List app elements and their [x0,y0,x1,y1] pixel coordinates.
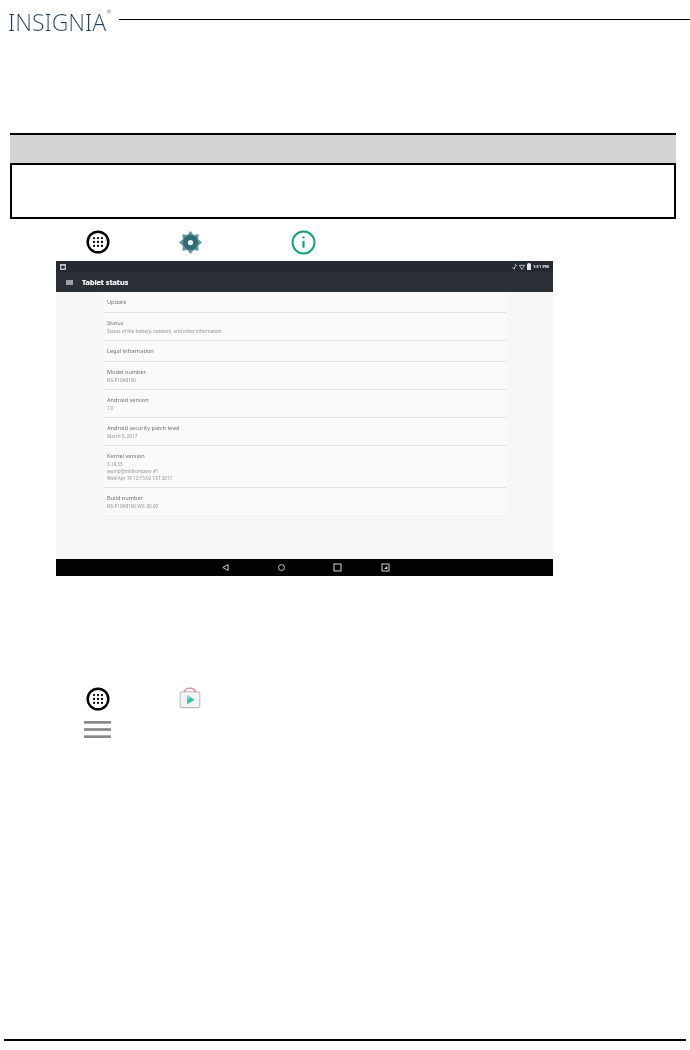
staticText: Legal information [107,347,154,355]
button[interactable]: Screenshot [372,559,398,576]
staticText: Kernel version [107,452,145,460]
staticText: ® [107,9,112,16]
button[interactable]: Update [103,292,506,312]
staticText: 1:11 PM [533,264,549,270]
button[interactable]: Model number [103,362,506,389]
button[interactable]: Settings [178,230,203,255]
button[interactable]: Kernel version [103,446,506,487]
staticText: Status of the battery, network, and othe… [107,328,222,334]
staticText: Model number [107,368,146,376]
button[interactable]: Android security patch level [103,418,506,445]
staticText: Build number [107,494,143,502]
button[interactable]: Apps [86,687,110,711]
staticText: Android version [107,396,149,404]
staticText: Wed Apr 19 12:15:02 CST 2017 [107,475,173,481]
button[interactable]: Android version [103,390,506,417]
button[interactable]: Legal information [103,341,506,361]
button[interactable]: About [291,230,316,255]
staticText: 3.18.35 [107,461,123,467]
button[interactable]: Recent apps [324,559,350,576]
button[interactable]: Home [268,559,294,576]
staticText: Tablet status [82,277,129,287]
button[interactable]: Play Store [178,687,202,711]
staticText: NS-P10A8100 V01.00.00 [107,503,159,509]
staticText: Status [107,319,124,327]
button[interactable]: Build number [103,488,506,515]
button[interactable]: Navigation menu [65,278,73,286]
button[interactable]: Status [103,313,506,340]
staticText: Android security patch level [107,424,180,432]
button[interactable]: Apps [86,230,110,254]
staticText: Update [107,298,127,306]
staticText: March 5, 2017 [107,433,138,439]
staticText: wump@midcompser #1 [107,468,159,474]
button[interactable]: Back [212,559,238,576]
button[interactable]: Menu [84,721,111,738]
staticText: NS-P10A8100 [107,377,136,383]
staticText: INSIGNIA [8,6,107,32]
staticText: 7.0 [107,405,114,411]
